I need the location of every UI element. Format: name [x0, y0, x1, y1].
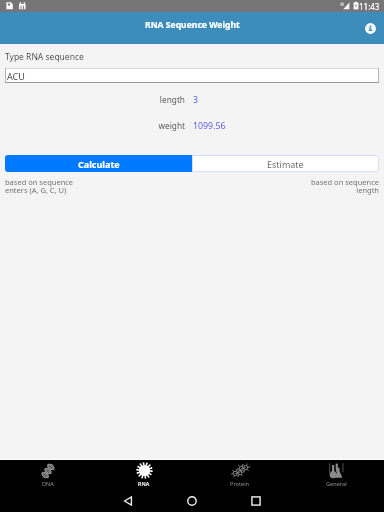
- staticText: Calculate: [78, 158, 120, 170]
- staticText: 3: [193, 94, 384, 106]
- button[interactable]: Protein: [192, 460, 288, 490]
- staticText: Protein: [230, 480, 250, 488]
- button[interactable]: Calculate: [5, 155, 192, 172]
- button[interactable]: Estimate: [192, 155, 379, 172]
- staticText: Type RNA sequence: [5, 51, 84, 63]
- staticText: General: [326, 480, 347, 488]
- staticText: RNA Sequence Weight: [145, 19, 240, 31]
- staticText: based on sequence enters (A, G, C, U): [5, 177, 192, 195]
- button[interactable]: Recent apps: [236, 490, 276, 512]
- button[interactable]: General: [288, 460, 384, 490]
- staticText: RNA: [138, 480, 150, 488]
- staticText: length: [0, 94, 185, 105]
- button[interactable]: ACU: [5, 68, 379, 83]
- button[interactable]: Back: [108, 490, 148, 512]
- button[interactable]: RNA: [96, 460, 192, 490]
- button[interactable]: Home: [172, 490, 212, 512]
- staticText: Estimate: [267, 158, 304, 170]
- staticText: 11:43: [359, 1, 380, 12]
- staticText: 1099.56: [193, 120, 384, 132]
- staticText: based on sequence length: [192, 177, 379, 195]
- staticText: ACU: [7, 70, 25, 82]
- staticText: weight: [0, 120, 185, 131]
- button[interactable]: Info: [360, 18, 380, 38]
- button[interactable]: DNA: [0, 460, 96, 490]
- staticText: DNA: [42, 480, 54, 488]
